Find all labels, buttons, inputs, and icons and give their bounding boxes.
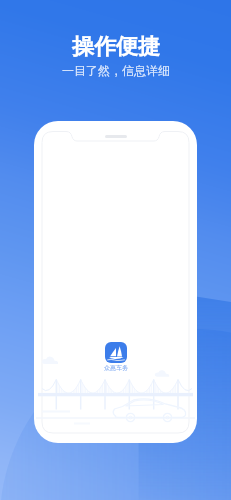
staticText: 一目了然，信息详细 bbox=[62, 63, 170, 78]
staticText: 操作便捷 bbox=[72, 33, 160, 61]
staticText: 众惠车务 bbox=[104, 364, 128, 372]
button[interactable]: 众惠车务 bbox=[104, 342, 128, 372]
